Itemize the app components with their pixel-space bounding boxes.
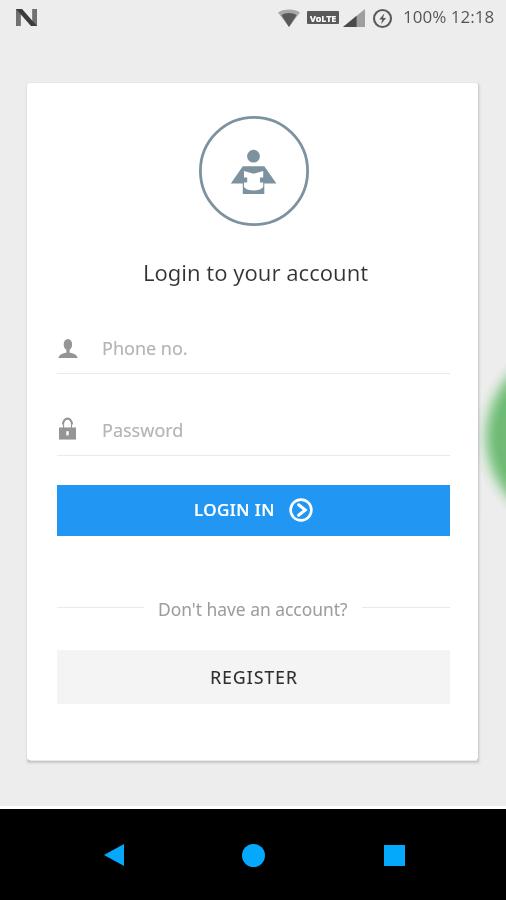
staticText: VoLTE xyxy=(310,12,337,24)
staticText: Password xyxy=(102,418,184,443)
button[interactable]: Recent apps xyxy=(369,830,419,880)
button[interactable]: LOGIN IN xyxy=(57,485,450,536)
button[interactable]: Home xyxy=(228,830,278,880)
staticText: Login to your account xyxy=(143,257,369,287)
staticText: Don't have an account? xyxy=(158,597,348,617)
staticText: REGISTER xyxy=(210,665,298,690)
button[interactable]: Back xyxy=(89,830,139,880)
staticText: LOGIN IN xyxy=(194,498,275,521)
staticText: Phone no. xyxy=(102,336,188,361)
button[interactable]: REGISTER xyxy=(57,650,450,704)
staticText: 100% 12:18 xyxy=(403,5,495,28)
